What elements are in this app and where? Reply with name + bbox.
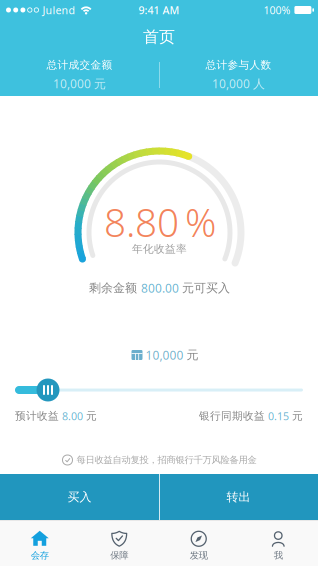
button[interactable]: 买入 xyxy=(0,474,159,520)
staticText: 保障 xyxy=(110,550,128,561)
button[interactable]: 发现 xyxy=(159,523,238,566)
staticText: 10,000 人 xyxy=(212,76,265,91)
button[interactable]: 保障 xyxy=(79,523,159,566)
button[interactable]: 我 xyxy=(238,523,318,566)
button[interactable]: 转出 xyxy=(159,474,318,520)
staticText: 我 xyxy=(274,550,283,561)
staticText: 转出 xyxy=(226,490,250,504)
staticText: 100% xyxy=(263,3,290,17)
staticText: 预计收益 xyxy=(15,409,62,422)
staticText: 元 xyxy=(86,409,97,422)
staticText: 会存 xyxy=(31,550,49,561)
staticText: 买入 xyxy=(67,490,91,504)
button[interactable]: 会存 xyxy=(0,523,79,566)
staticText: 剩余金额 xyxy=(89,281,141,295)
staticText: 800.00 xyxy=(141,280,182,296)
staticText: 每日收益自动复投，招商银行千万风险备用金 xyxy=(76,454,256,466)
staticText: 元 xyxy=(292,409,303,422)
staticText: 8.00 xyxy=(62,409,86,423)
staticText: 8.80 % xyxy=(104,196,216,248)
button[interactable]: Amount slider xyxy=(0,378,318,402)
staticText: 0.15 xyxy=(268,409,292,423)
staticText: 元 xyxy=(186,348,198,362)
staticText: Julend xyxy=(43,3,76,17)
staticText: 首页 xyxy=(143,27,175,47)
staticText: 总计参与人数 xyxy=(205,58,271,72)
staticText: 发现 xyxy=(190,550,208,561)
staticText: 9:41 AM xyxy=(138,3,179,17)
staticText: 总计成交金额 xyxy=(46,58,112,72)
staticText: 年化收益率 xyxy=(132,242,187,255)
staticText: 银行同期收益 xyxy=(199,409,268,422)
staticText: 10,000 元 xyxy=(53,76,106,91)
staticText: 元可买入 xyxy=(182,281,230,295)
staticText: 10,000 xyxy=(145,347,183,363)
